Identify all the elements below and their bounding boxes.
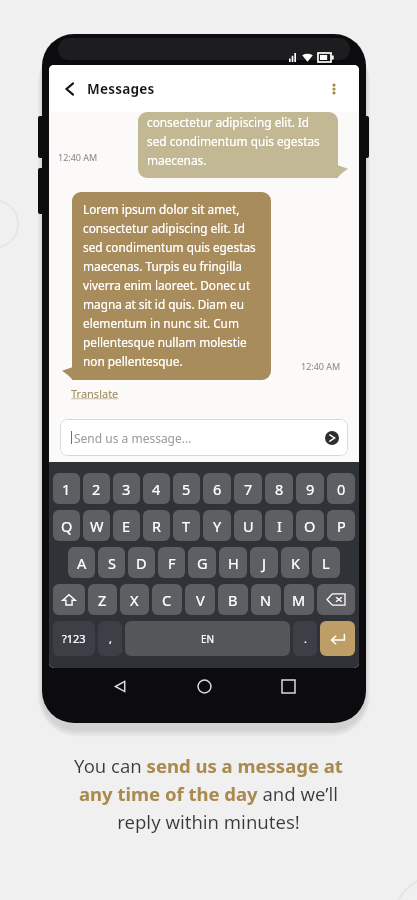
button[interactable]: Translate bbox=[71, 386, 119, 401]
button[interactable]: Y bbox=[203, 510, 231, 541]
button[interactable]: Q bbox=[53, 510, 80, 541]
button[interactable]: C bbox=[152, 584, 182, 615]
button[interactable]: L bbox=[312, 547, 340, 578]
staticText: 1 bbox=[62, 479, 71, 499]
button[interactable]: K bbox=[281, 547, 309, 578]
staticText: N bbox=[260, 590, 272, 610]
staticText: T bbox=[182, 516, 191, 536]
staticText: Lorem ipsum dolor sit amet, consectetur … bbox=[83, 201, 260, 370]
staticText: C bbox=[162, 590, 172, 610]
button[interactable]: EN bbox=[125, 621, 290, 656]
staticText: J bbox=[262, 553, 266, 573]
staticText: 0 bbox=[337, 479, 346, 499]
staticText: . bbox=[304, 631, 307, 646]
staticText: W bbox=[90, 516, 104, 536]
button[interactable]: D bbox=[128, 547, 155, 578]
staticText: I bbox=[277, 516, 282, 536]
staticText: K bbox=[291, 553, 300, 573]
button[interactable]: N bbox=[251, 584, 281, 615]
button[interactable]: B bbox=[218, 584, 248, 615]
button[interactable]: 7 bbox=[234, 473, 262, 504]
button[interactable]: R bbox=[143, 510, 170, 541]
button[interactable]: Back bbox=[107, 673, 133, 699]
button[interactable]: F bbox=[158, 547, 185, 578]
button[interactable]: ?123 bbox=[53, 621, 95, 656]
staticText: H bbox=[228, 553, 239, 573]
button[interactable]: Z bbox=[88, 584, 117, 615]
staticText: 7 bbox=[244, 479, 253, 499]
button[interactable]: V bbox=[185, 584, 215, 615]
button[interactable]: Home bbox=[191, 673, 217, 699]
button[interactable]: Back bbox=[61, 80, 79, 98]
staticText: V bbox=[196, 590, 205, 610]
staticText: 2 bbox=[92, 479, 101, 499]
button[interactable]: G bbox=[188, 547, 216, 578]
staticText: Translate bbox=[71, 386, 119, 401]
staticText: 12:40 AM bbox=[58, 151, 98, 163]
button[interactable]: E bbox=[113, 510, 140, 541]
staticText: Q bbox=[61, 516, 73, 536]
button[interactable]: 1 bbox=[53, 473, 80, 504]
button[interactable]: S bbox=[98, 547, 125, 578]
staticText: L bbox=[322, 553, 330, 573]
staticText: EN bbox=[201, 632, 215, 646]
staticText: 4 bbox=[152, 479, 161, 499]
staticText: consectetur adipiscing elit. Id sed cond… bbox=[147, 114, 320, 169]
staticText: G bbox=[197, 553, 208, 573]
staticText: O bbox=[304, 516, 316, 536]
button[interactable]: X bbox=[120, 584, 149, 615]
button[interactable]: Enter bbox=[320, 621, 355, 656]
button[interactable]: Send bbox=[325, 431, 339, 445]
staticText: 6 bbox=[213, 479, 222, 499]
staticText: 8 bbox=[275, 479, 284, 499]
button[interactable]: A bbox=[68, 547, 95, 578]
staticText: 5 bbox=[182, 479, 191, 499]
staticText: U bbox=[243, 516, 254, 536]
button[interactable]: H bbox=[219, 547, 247, 578]
staticText: ?123 bbox=[62, 631, 86, 646]
staticText: 12:40 AM bbox=[301, 360, 341, 372]
button[interactable]: P bbox=[327, 510, 355, 541]
button[interactable]: More options bbox=[325, 80, 343, 98]
button[interactable]: Shift bbox=[53, 584, 85, 615]
staticText: X bbox=[130, 590, 139, 610]
staticText: Z bbox=[98, 590, 107, 610]
staticText: Send us a message... bbox=[74, 430, 192, 446]
staticText: Messages bbox=[87, 80, 155, 98]
button[interactable]: U bbox=[234, 510, 262, 541]
button[interactable]: J bbox=[250, 547, 278, 578]
staticText: P bbox=[337, 516, 346, 536]
button[interactable]: T bbox=[173, 510, 200, 541]
staticText: You can send us a message at any time of… bbox=[52, 753, 365, 834]
staticText: E bbox=[122, 516, 131, 536]
staticText: R bbox=[152, 516, 162, 536]
button[interactable]: 5 bbox=[173, 473, 200, 504]
staticText: 9 bbox=[306, 479, 315, 499]
staticText: M bbox=[292, 590, 306, 610]
staticText: S bbox=[108, 553, 116, 573]
staticText: A bbox=[77, 553, 87, 573]
button[interactable]: 3 bbox=[113, 473, 140, 504]
button[interactable]: 6 bbox=[203, 473, 231, 504]
button[interactable]: 2 bbox=[83, 473, 110, 504]
button[interactable]: 0 bbox=[327, 473, 355, 504]
button[interactable]: Send us a message... bbox=[60, 419, 348, 456]
staticText: B bbox=[228, 590, 238, 610]
button[interactable]: Backspace bbox=[317, 584, 355, 615]
staticText: F bbox=[168, 553, 176, 573]
button[interactable]: O bbox=[296, 510, 324, 541]
staticText: D bbox=[136, 553, 147, 573]
button[interactable]: 4 bbox=[143, 473, 170, 504]
button[interactable]: . bbox=[293, 621, 317, 656]
button[interactable]: W bbox=[83, 510, 110, 541]
button[interactable]: 8 bbox=[265, 473, 293, 504]
button[interactable]: Recent apps bbox=[275, 673, 301, 699]
button[interactable]: , bbox=[98, 621, 122, 656]
staticText: 3 bbox=[122, 479, 131, 499]
button[interactable]: I bbox=[265, 510, 293, 541]
staticText: Y bbox=[213, 516, 222, 536]
button[interactable]: M bbox=[284, 584, 314, 615]
staticText: , bbox=[109, 631, 112, 646]
button[interactable]: 9 bbox=[296, 473, 324, 504]
